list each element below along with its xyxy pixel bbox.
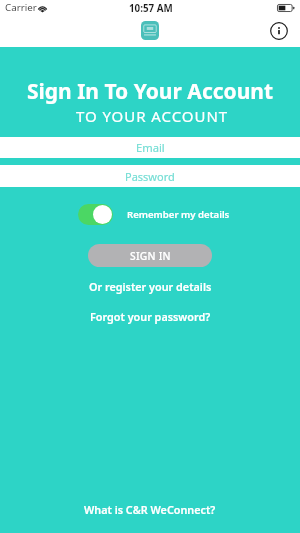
button[interactable]: What is C&R WeConnect?	[84, 500, 216, 518]
staticText: Sign In To Your Account	[0, 77, 300, 106]
button[interactable]: C&R WeConnect logo	[141, 21, 159, 40]
button[interactable]: SIGN IN	[88, 244, 212, 267]
staticText: Password	[125, 169, 175, 184]
staticText: Email	[136, 140, 165, 155]
button[interactable]: Or register your details	[89, 277, 212, 295]
button[interactable]: Email	[0, 137, 300, 158]
staticText: Or register your details	[89, 279, 212, 294]
staticText: Remember my details	[127, 208, 230, 221]
staticText: 10:57 AM	[129, 2, 173, 15]
staticText: TO YOUR ACCOUNT	[2, 106, 300, 126]
staticText: Forgot your password?	[90, 309, 211, 324]
button[interactable]: Forgot your password?	[90, 307, 211, 325]
staticText: SIGN IN	[130, 249, 171, 263]
button[interactable]: Remember my details, on	[78, 204, 113, 225]
staticText: Carrier	[5, 1, 37, 14]
staticText: What is C&R WeConnect?	[84, 502, 216, 517]
button[interactable]: Info	[268, 20, 289, 41]
button[interactable]: Password	[0, 165, 300, 187]
